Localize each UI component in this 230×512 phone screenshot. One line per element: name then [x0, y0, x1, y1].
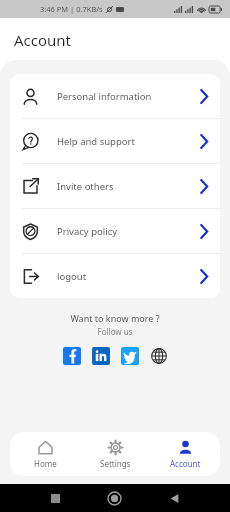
button[interactable]: logout	[10, 254, 220, 298]
staticText: Invite others	[57, 180, 114, 193]
button[interactable]: Invite others	[10, 164, 220, 208]
button[interactable]: Back	[169, 493, 180, 504]
staticText: Want to know more ?	[0, 312, 230, 324]
staticText: 3:46 PM | 0.7KB/s	[40, 4, 103, 14]
button[interactable]: Twitter	[121, 347, 139, 365]
button[interactable]: Settings	[80, 432, 150, 476]
staticText: Privacy policy	[57, 225, 118, 238]
button[interactable]: Home	[108, 492, 121, 505]
button[interactable]: Facebook	[63, 347, 81, 365]
staticText: Home	[34, 458, 57, 469]
staticText: Account	[14, 30, 72, 50]
staticText: Follow us	[0, 326, 230, 337]
button[interactable]: Account	[150, 432, 220, 476]
button[interactable]: Personal information	[10, 74, 220, 118]
button[interactable]: Privacy policy	[10, 209, 220, 253]
staticText: Help and support	[57, 135, 135, 148]
button[interactable]: LinkedIn	[92, 347, 110, 365]
staticText: logout	[57, 270, 87, 283]
button[interactable]: Website	[150, 347, 168, 365]
staticText: Account	[170, 458, 201, 469]
staticText: Settings	[100, 458, 131, 469]
staticText: Personal information	[57, 90, 152, 103]
button[interactable]: Home	[10, 432, 80, 476]
button[interactable]: Help and support	[10, 119, 220, 163]
